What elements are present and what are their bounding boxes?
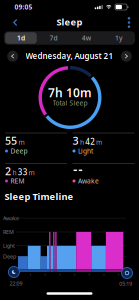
staticText: 09:05 — [14, 2, 32, 11]
button[interactable]: 1d — [5, 32, 37, 44]
staticText: Sleep — [56, 16, 82, 28]
staticText: 33 — [18, 167, 28, 177]
button[interactable] — [7, 50, 18, 62]
staticText: Awake — [3, 215, 19, 222]
staticText: 2 — [5, 164, 11, 178]
staticText: 3 — [72, 133, 78, 148]
staticText: Awake — [78, 177, 99, 185]
staticText: m — [29, 168, 35, 177]
staticText: 7d — [50, 34, 58, 42]
staticText: REM — [3, 228, 14, 236]
staticText: h — [80, 138, 84, 146]
staticText: 1d — [17, 34, 25, 42]
staticText: m — [96, 138, 102, 146]
button[interactable]: 7d — [38, 31, 69, 44]
staticText: 7h 10m — [48, 84, 92, 100]
staticText: Light — [78, 147, 93, 155]
staticText: 22:09 — [9, 280, 22, 287]
staticText: 1y — [115, 34, 123, 42]
staticText: 42 — [85, 136, 95, 147]
staticText: REM — [10, 177, 24, 185]
button[interactable] — [7, 14, 23, 30]
button[interactable]: 1y — [103, 31, 134, 44]
button[interactable] — [120, 50, 132, 62]
button[interactable] — [123, 14, 135, 30]
button[interactable]: 4w — [71, 31, 102, 44]
staticText: Light — [3, 242, 15, 249]
staticText: Sleep Timeline — [4, 190, 73, 202]
staticText: Total Sleep — [52, 99, 87, 107]
staticText: Wednesday, August 21 — [25, 51, 113, 61]
staticText: h — [12, 168, 16, 177]
staticText: 55 — [5, 133, 17, 148]
staticText: Deep — [10, 147, 27, 155]
staticText: m — [18, 138, 24, 146]
staticText: 4w — [82, 34, 91, 42]
staticText: 05:19 — [119, 280, 132, 287]
staticText: Deep — [3, 253, 16, 260]
